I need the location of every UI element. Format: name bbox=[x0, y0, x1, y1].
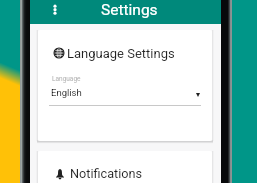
staticText: Notifications bbox=[70, 166, 143, 181]
button[interactable]: More options bbox=[45, 0, 65, 20]
staticText: Language Settings bbox=[67, 46, 175, 61]
staticText: Language bbox=[52, 75, 81, 83]
button[interactable]: Language Settings bbox=[38, 30, 212, 141]
staticText: Settings bbox=[101, 1, 158, 19]
staticText: English bbox=[51, 87, 82, 98]
button[interactable]: Notifications bbox=[38, 151, 212, 183]
